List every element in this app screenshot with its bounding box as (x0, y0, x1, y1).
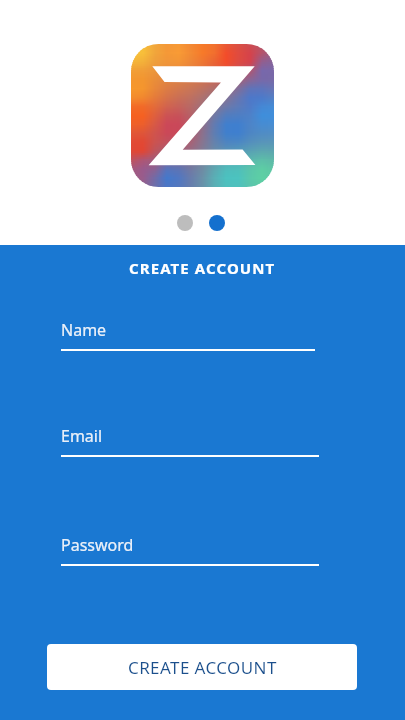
staticText: Password (61, 534, 134, 556)
button[interactable]: CREATE ACCOUNT (47, 644, 357, 690)
button[interactable]: Page 1 (177, 215, 193, 231)
staticText: CREATE ACCOUNT (128, 656, 277, 679)
button[interactable]: Page 2 (209, 215, 225, 231)
staticText: Email (61, 425, 103, 447)
staticText: Name (61, 319, 107, 341)
staticText: CREATE ACCOUNT (129, 258, 276, 278)
